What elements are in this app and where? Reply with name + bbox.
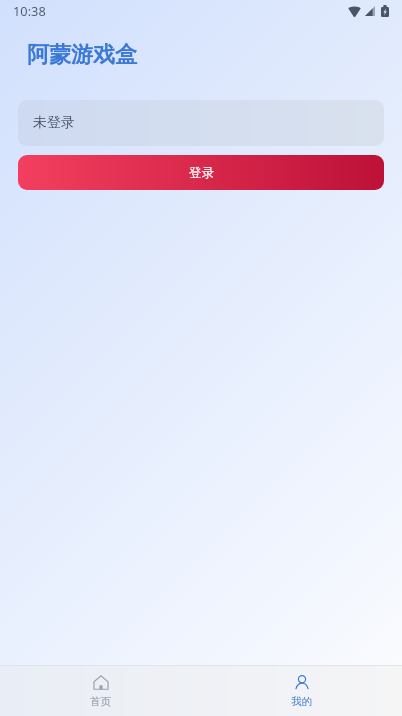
staticText: 10:38 [13,2,46,19]
staticText: 我的 [291,695,312,708]
staticText: 阿蒙游戏盒 [27,41,137,69]
button[interactable]: 首页 [0,666,201,716]
button[interactable]: 未登录 [18,100,384,146]
staticText: 首页 [90,695,111,708]
button[interactable]: 我的 [201,666,402,716]
staticText: 登录 [189,165,214,181]
staticText: 未登录 [33,114,75,132]
button[interactable]: 登录 [18,155,384,190]
